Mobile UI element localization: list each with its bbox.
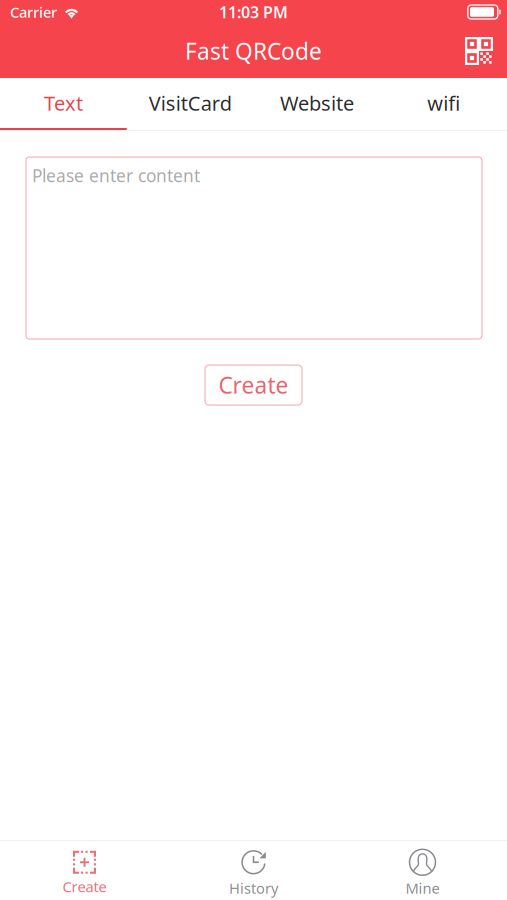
button[interactable]: VisitCard: [127, 78, 254, 130]
staticText: Create: [218, 370, 288, 400]
button[interactable]: Create: [205, 365, 302, 405]
staticText: 11:03 PM: [219, 1, 288, 23]
staticText: History: [229, 878, 278, 898]
button[interactable]: History: [169, 843, 338, 898]
button[interactable]: Mine: [338, 843, 507, 898]
button[interactable]: Create: [0, 845, 169, 896]
staticText: Mine: [405, 878, 439, 898]
button[interactable]: wifi: [380, 78, 507, 130]
staticText: VisitCard: [149, 90, 232, 116]
staticText: Website: [280, 90, 354, 116]
staticText: wifi: [427, 90, 460, 116]
button[interactable]: Website: [253, 78, 380, 130]
staticText: Fast QRCode: [185, 36, 322, 66]
staticText: Text: [44, 90, 83, 116]
button[interactable]: Text: [0, 78, 127, 130]
staticText: Carrier: [10, 2, 57, 22]
button[interactable]: Scan QR code: [451, 29, 507, 73]
staticText: Create: [62, 877, 106, 896]
staticText: Please enter content: [32, 164, 200, 187]
